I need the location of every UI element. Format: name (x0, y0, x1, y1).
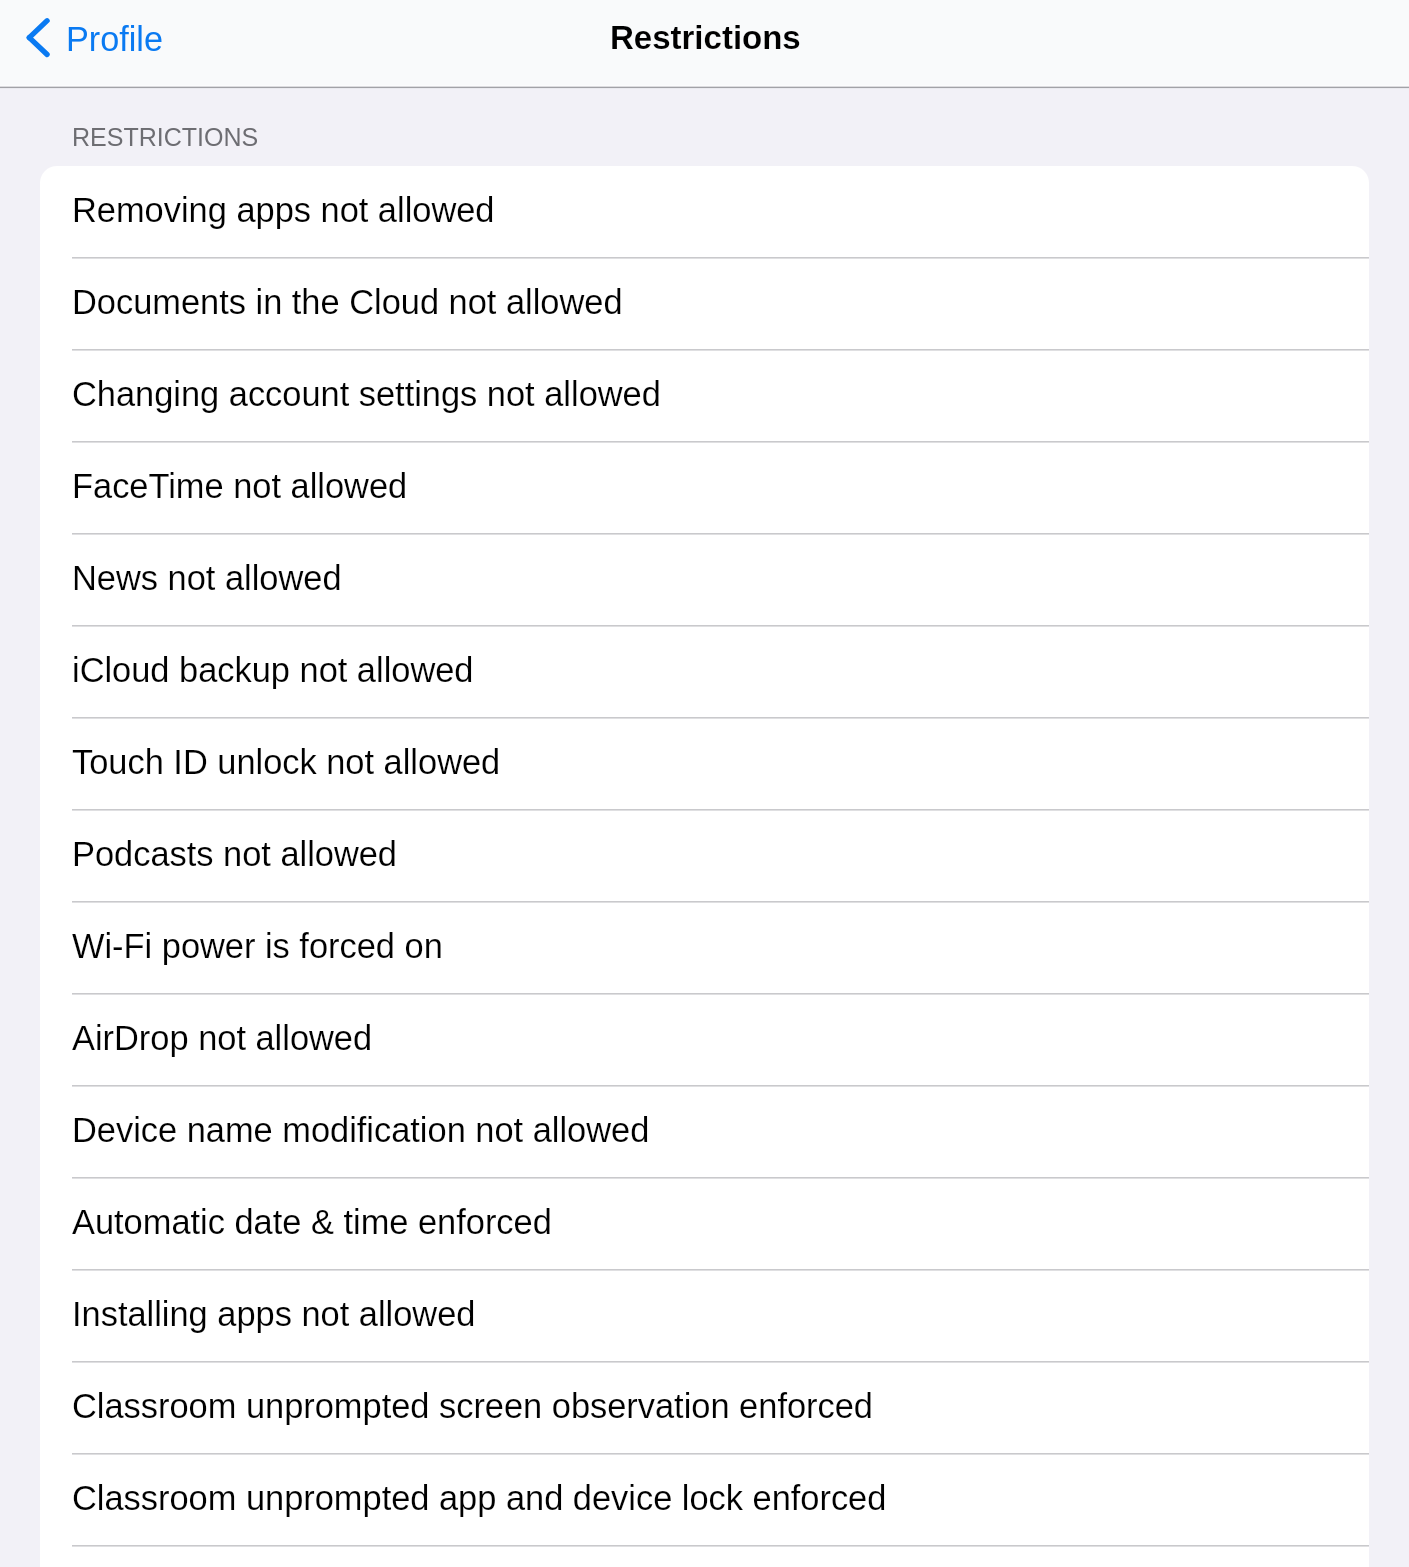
button[interactable]: FaceTime not allowed (40, 442, 1369, 534)
button[interactable]: Classroom unprompted screen observation … (40, 1362, 1369, 1454)
button[interactable]: Removing apps not allowed (40, 166, 1369, 258)
staticText: iCloud backup not allowed (72, 651, 474, 689)
staticText: Restrictions (610, 19, 801, 56)
staticText: News not allowed (72, 559, 342, 597)
button[interactable]: Documents in the Cloud not allowed (40, 258, 1369, 350)
staticText: Automatic date & time enforced (72, 1203, 552, 1241)
staticText: Touch ID unlock not allowed (72, 743, 501, 781)
staticText: Device name modification not allowed (72, 1111, 650, 1149)
button[interactable]: Automatic date & time enforced (40, 1178, 1369, 1270)
button[interactable]: Changing account settings not allowed (40, 350, 1369, 442)
button[interactable]: News not allowed (40, 534, 1369, 626)
staticText: Wi-Fi power is forced on (72, 927, 443, 965)
staticText: Podcasts not allowed (72, 835, 397, 873)
button[interactable]: Classroom unprompted app and device lock… (40, 1546, 1369, 1567)
staticText: RESTRICTIONS (72, 123, 259, 151)
button[interactable]: Wi-Fi power is forced on (40, 902, 1369, 994)
button[interactable]: Classroom unprompted app and device lock… (40, 1454, 1369, 1546)
staticText: AirDrop not allowed (72, 1019, 373, 1057)
staticText: Classroom unprompted screen observation … (72, 1387, 873, 1425)
button[interactable]: Installing apps not allowed (40, 1270, 1369, 1362)
button[interactable]: Back to Profile (0, 0, 173, 88)
staticText: Changing account settings not allowed (72, 375, 661, 413)
staticText: Installing apps not allowed (72, 1295, 476, 1333)
staticText: Removing apps not allowed (72, 191, 495, 229)
staticText: Documents in the Cloud not allowed (72, 283, 623, 321)
button[interactable]: AirDrop not allowed (40, 994, 1369, 1086)
button[interactable]: Podcasts not allowed (40, 810, 1369, 902)
staticText: Profile (66, 20, 163, 58)
button[interactable]: Device name modification not allowed (40, 1086, 1369, 1178)
staticText: FaceTime not allowed (72, 467, 408, 505)
button[interactable]: iCloud backup not allowed (40, 626, 1369, 718)
staticText: Classroom unprompted app and device lock… (72, 1479, 887, 1517)
button[interactable]: Touch ID unlock not allowed (40, 718, 1369, 810)
